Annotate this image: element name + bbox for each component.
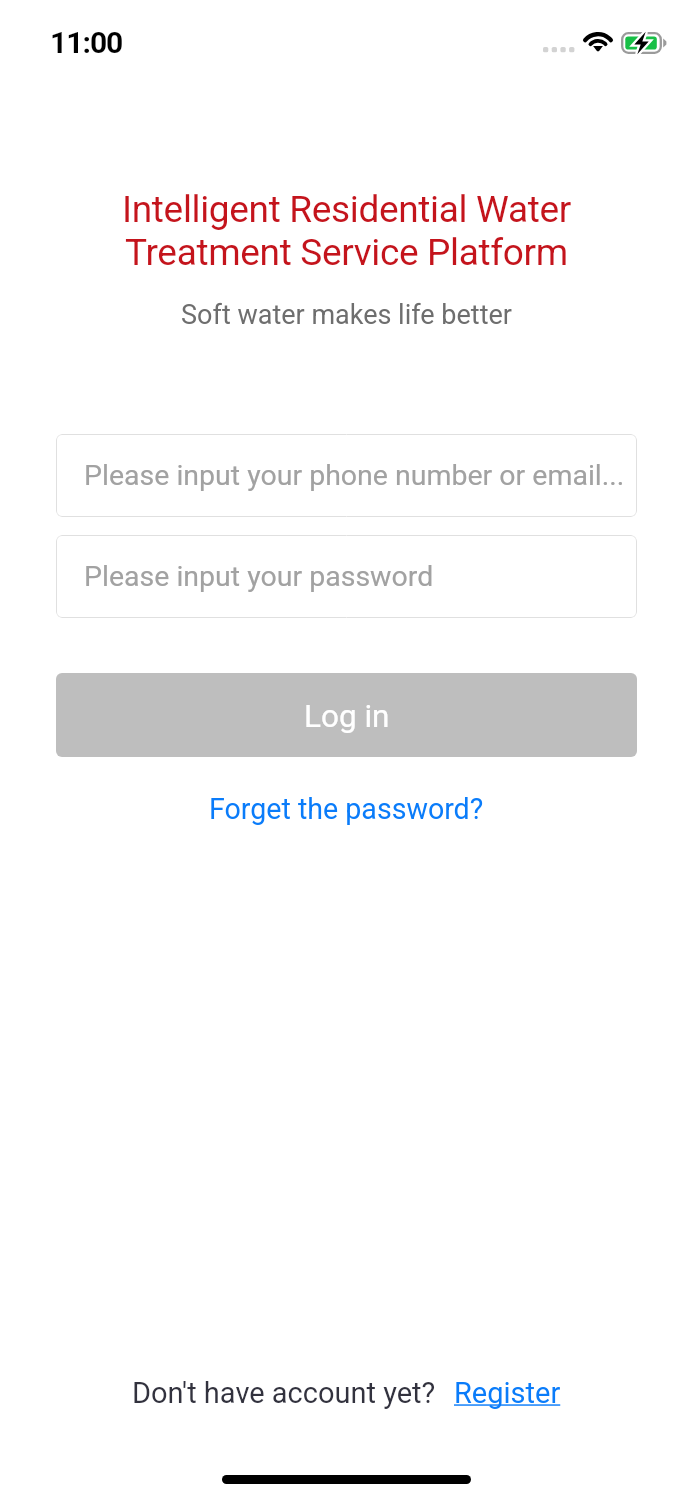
other: Battery charging <box>621 32 667 55</box>
other: Signal strength <box>543 47 575 53</box>
button[interactable]: Please input your password <box>56 535 637 618</box>
staticText: Log in <box>304 698 390 735</box>
other: Wi-Fi <box>584 32 612 53</box>
staticText: Register <box>454 1376 561 1410</box>
staticText: Forget the password? <box>209 792 484 826</box>
staticText: Intelligent Residential Water Treatment … <box>0 188 693 274</box>
button[interactable]: Register <box>454 1376 561 1410</box>
staticText: Soft water makes life better <box>0 299 693 331</box>
staticText: 11:00 <box>50 25 123 60</box>
staticText: Please input your phone number or email.… <box>84 459 625 492</box>
staticText: Don't have account yet? <box>132 1376 436 1410</box>
staticText: Please input your password <box>84 560 434 593</box>
button[interactable]: Forget the password? <box>201 788 492 830</box>
button[interactable]: Please input your phone number or email.… <box>56 434 637 517</box>
button[interactable]: Log in <box>56 673 637 757</box>
